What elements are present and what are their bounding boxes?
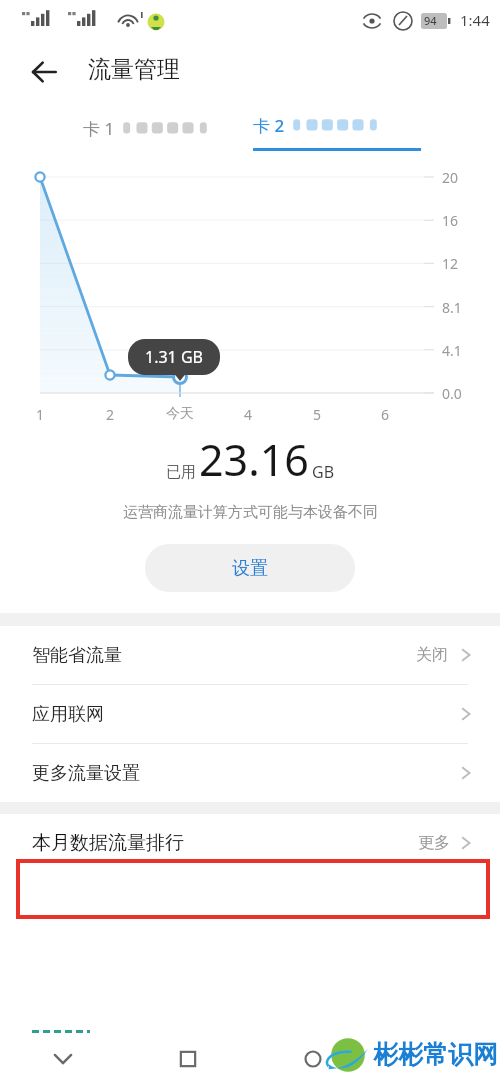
staticText: 16 xyxy=(442,211,459,230)
staticText: 1:44 xyxy=(460,10,490,30)
button[interactable]: 应用联网 xyxy=(0,685,500,744)
staticText: 12 xyxy=(442,254,459,273)
staticText: 20 xyxy=(442,168,459,187)
staticText: 流量管理 xyxy=(88,55,180,84)
staticText: 8.1 xyxy=(442,298,462,317)
staticText: 彬彬常识网 xyxy=(373,1039,498,1070)
staticText: 23.16 xyxy=(199,430,309,489)
staticText: 5 xyxy=(312,405,322,424)
staticText: 4 xyxy=(243,405,253,424)
staticText: 0.0 xyxy=(442,384,462,403)
staticText: 6 xyxy=(380,405,390,424)
staticText: 本月数据流量排行 xyxy=(32,831,184,855)
staticText: 1.31 GB xyxy=(145,346,203,368)
button[interactable]: 卡 2 xyxy=(253,108,421,151)
staticText: 1 xyxy=(35,405,45,424)
staticText: GB xyxy=(312,461,335,483)
staticText: 更多流量设置 xyxy=(32,762,140,785)
staticText: 运营商流量计算方式可能与本设备不同 xyxy=(123,503,378,522)
staticText: 更多 xyxy=(418,833,450,853)
staticText: 卡 1 xyxy=(83,117,115,140)
button[interactable]: 智能省流量 xyxy=(0,626,500,685)
staticText: 设置 xyxy=(232,557,268,580)
staticText: 2 xyxy=(105,405,115,424)
button[interactable]: 设置 xyxy=(145,544,355,592)
staticText: 4.1 xyxy=(442,341,462,360)
button[interactable]: 卡 1 xyxy=(83,108,211,148)
button[interactable]: 更多流量设置 xyxy=(0,744,500,802)
button[interactable]: 本月数据流量排行 xyxy=(0,814,500,872)
button[interactable]: Home xyxy=(125,1034,250,1084)
staticText: 应用联网 xyxy=(32,703,104,726)
staticText: 今天 xyxy=(163,405,197,423)
staticText: 卡 2 xyxy=(253,114,285,137)
button[interactable]: Recents xyxy=(250,1034,375,1084)
staticText: 已用 xyxy=(166,463,196,482)
staticText: 智能省流量 xyxy=(32,644,122,667)
staticText: 关闭 xyxy=(416,645,448,665)
staticText: 94 xyxy=(424,13,437,28)
button[interactable]: Back xyxy=(0,1034,125,1084)
button[interactable]: Back xyxy=(22,50,66,94)
